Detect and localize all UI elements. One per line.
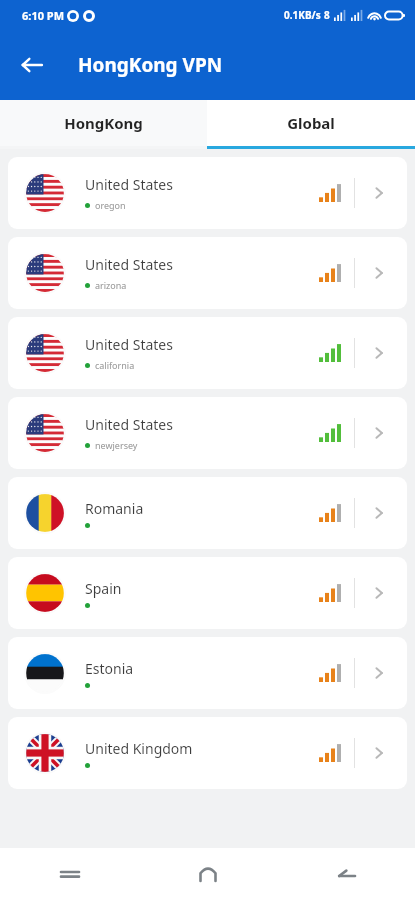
staticText: arizona xyxy=(95,279,127,291)
button[interactable]: Estonia xyxy=(8,637,407,709)
staticText: 6:10 PM xyxy=(22,8,65,23)
staticText: HongKong xyxy=(64,113,143,133)
button[interactable]: Global xyxy=(207,100,415,146)
staticText: 8 xyxy=(324,8,330,22)
staticText: Romania xyxy=(85,499,144,518)
button[interactable]: Back xyxy=(277,848,415,900)
button[interactable]: Open server details xyxy=(355,409,403,457)
button[interactable]: Open server details xyxy=(355,729,403,777)
button[interactable]: Open server details xyxy=(355,249,403,297)
button[interactable]: Romania xyxy=(8,477,407,549)
staticText: Estonia xyxy=(85,659,134,678)
staticText: United States xyxy=(85,255,173,274)
staticText: california xyxy=(95,359,135,371)
staticText: United States xyxy=(85,415,173,434)
button[interactable]: United States xyxy=(8,397,407,469)
button[interactable]: United States xyxy=(8,317,407,389)
staticText: United States xyxy=(85,175,173,194)
button[interactable]: United States xyxy=(8,157,407,229)
button[interactable]: Open server details xyxy=(355,329,403,377)
staticText: newjersey xyxy=(95,439,138,451)
button[interactable]: United States xyxy=(8,237,407,309)
button[interactable]: Recent apps xyxy=(0,848,139,900)
staticText: 0.1KB/s xyxy=(284,8,321,22)
staticText: Global xyxy=(287,113,335,133)
staticText: United Kingdom xyxy=(85,739,193,758)
staticText: United States xyxy=(85,335,173,354)
button[interactable]: United Kingdom xyxy=(8,717,407,789)
button[interactable]: Open server details xyxy=(355,649,403,697)
button[interactable]: Spain xyxy=(8,557,407,629)
button[interactable]: Back xyxy=(10,43,54,87)
button[interactable]: Home xyxy=(139,848,277,900)
button[interactable]: HongKong xyxy=(0,100,207,146)
button[interactable]: Open server details xyxy=(355,489,403,537)
staticText: HongKong VPN xyxy=(78,52,223,78)
button[interactable]: Open server details xyxy=(355,569,403,617)
button[interactable]: Open server details xyxy=(355,169,403,217)
staticText: oregon xyxy=(95,199,126,211)
staticText: Spain xyxy=(85,579,122,598)
